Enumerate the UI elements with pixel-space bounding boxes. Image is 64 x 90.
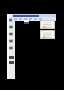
button[interactable]: Tool 0 — [7, 14, 15, 79]
button[interactable]: Selected item — [24, 20, 29, 24]
button[interactable] — [40, 30, 55, 39]
button[interactable]: Tool 4 — [9, 46, 14, 50]
button[interactable]: Tool 0 — [9, 18, 14, 22]
button[interactable]: Tool 1 — [9, 25, 14, 29]
button[interactable] — [12, 14, 56, 21]
button[interactable]: Tool 2 — [9, 32, 14, 36]
button[interactable]: Tool 3 — [9, 39, 14, 43]
button[interactable] — [40, 20, 55, 29]
